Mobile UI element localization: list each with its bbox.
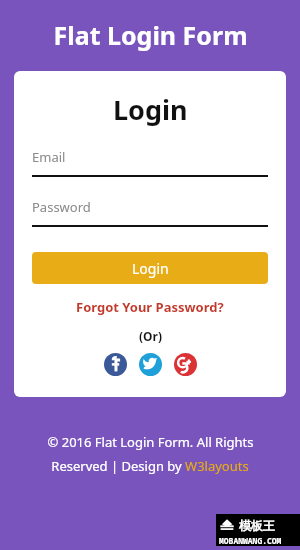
staticText: Login: [113, 91, 188, 128]
button[interactable]: Forgot Your Password?: [72, 296, 228, 318]
button[interactable]: Login: [32, 252, 268, 284]
button[interactable]: Email: [32, 148, 268, 177]
staticText: Forgot Your Password?: [76, 298, 224, 316]
staticText: Flat Login Form: [53, 18, 248, 52]
button[interactable]: mobanwang.com: [216, 514, 300, 546]
button[interactable]: Google Plus: [174, 353, 197, 376]
button[interactable]: Twitter: [139, 353, 162, 376]
button[interactable]: Facebook: [104, 353, 127, 376]
staticText: Password: [32, 198, 91, 216]
staticText: 模板王: [239, 518, 275, 533]
staticText: (Or): [139, 328, 162, 344]
staticText: Email: [32, 148, 66, 166]
staticText: Login: [132, 259, 169, 278]
button[interactable]: Password: [32, 198, 268, 227]
staticText: © 2016 Flat Login Form. All Rights: [47, 433, 254, 451]
staticText: Reserved | Design by W3layouts: [51, 457, 249, 475]
staticText: MOBANWANG.COM: [219, 535, 282, 544]
